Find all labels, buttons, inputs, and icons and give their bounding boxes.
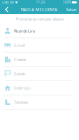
button[interactable]: Estado bbox=[0, 67, 79, 81]
button[interactable]: Salvar bbox=[65, 7, 78, 12]
button[interactable]: Ricardo Lira bbox=[0, 24, 79, 38]
staticText: 11:24 bbox=[36, 1, 45, 4]
button[interactable]: E-mail bbox=[0, 38, 79, 52]
staticText: Salvar bbox=[66, 7, 77, 12]
staticText: Ricardo Lira bbox=[14, 28, 35, 33]
staticText: Estado bbox=[14, 71, 25, 76]
button[interactable]: Back bbox=[1, 5, 13, 14]
staticText: PAGO A MI CUENTA bbox=[20, 7, 57, 12]
staticText: Claro BR bbox=[2, 1, 14, 4]
staticText: Preencha os campos abaixo bbox=[15, 16, 63, 22]
staticText: Telefone bbox=[14, 99, 28, 105]
staticText: Endereço bbox=[14, 85, 30, 90]
button[interactable]: Cidade bbox=[0, 52, 79, 67]
staticText: 100% bbox=[63, 1, 71, 4]
button[interactable]: Endereço bbox=[0, 81, 79, 95]
staticText: Cidade bbox=[14, 57, 26, 62]
staticText: E-mail bbox=[14, 42, 25, 48]
button[interactable]: Telefone bbox=[0, 95, 79, 109]
